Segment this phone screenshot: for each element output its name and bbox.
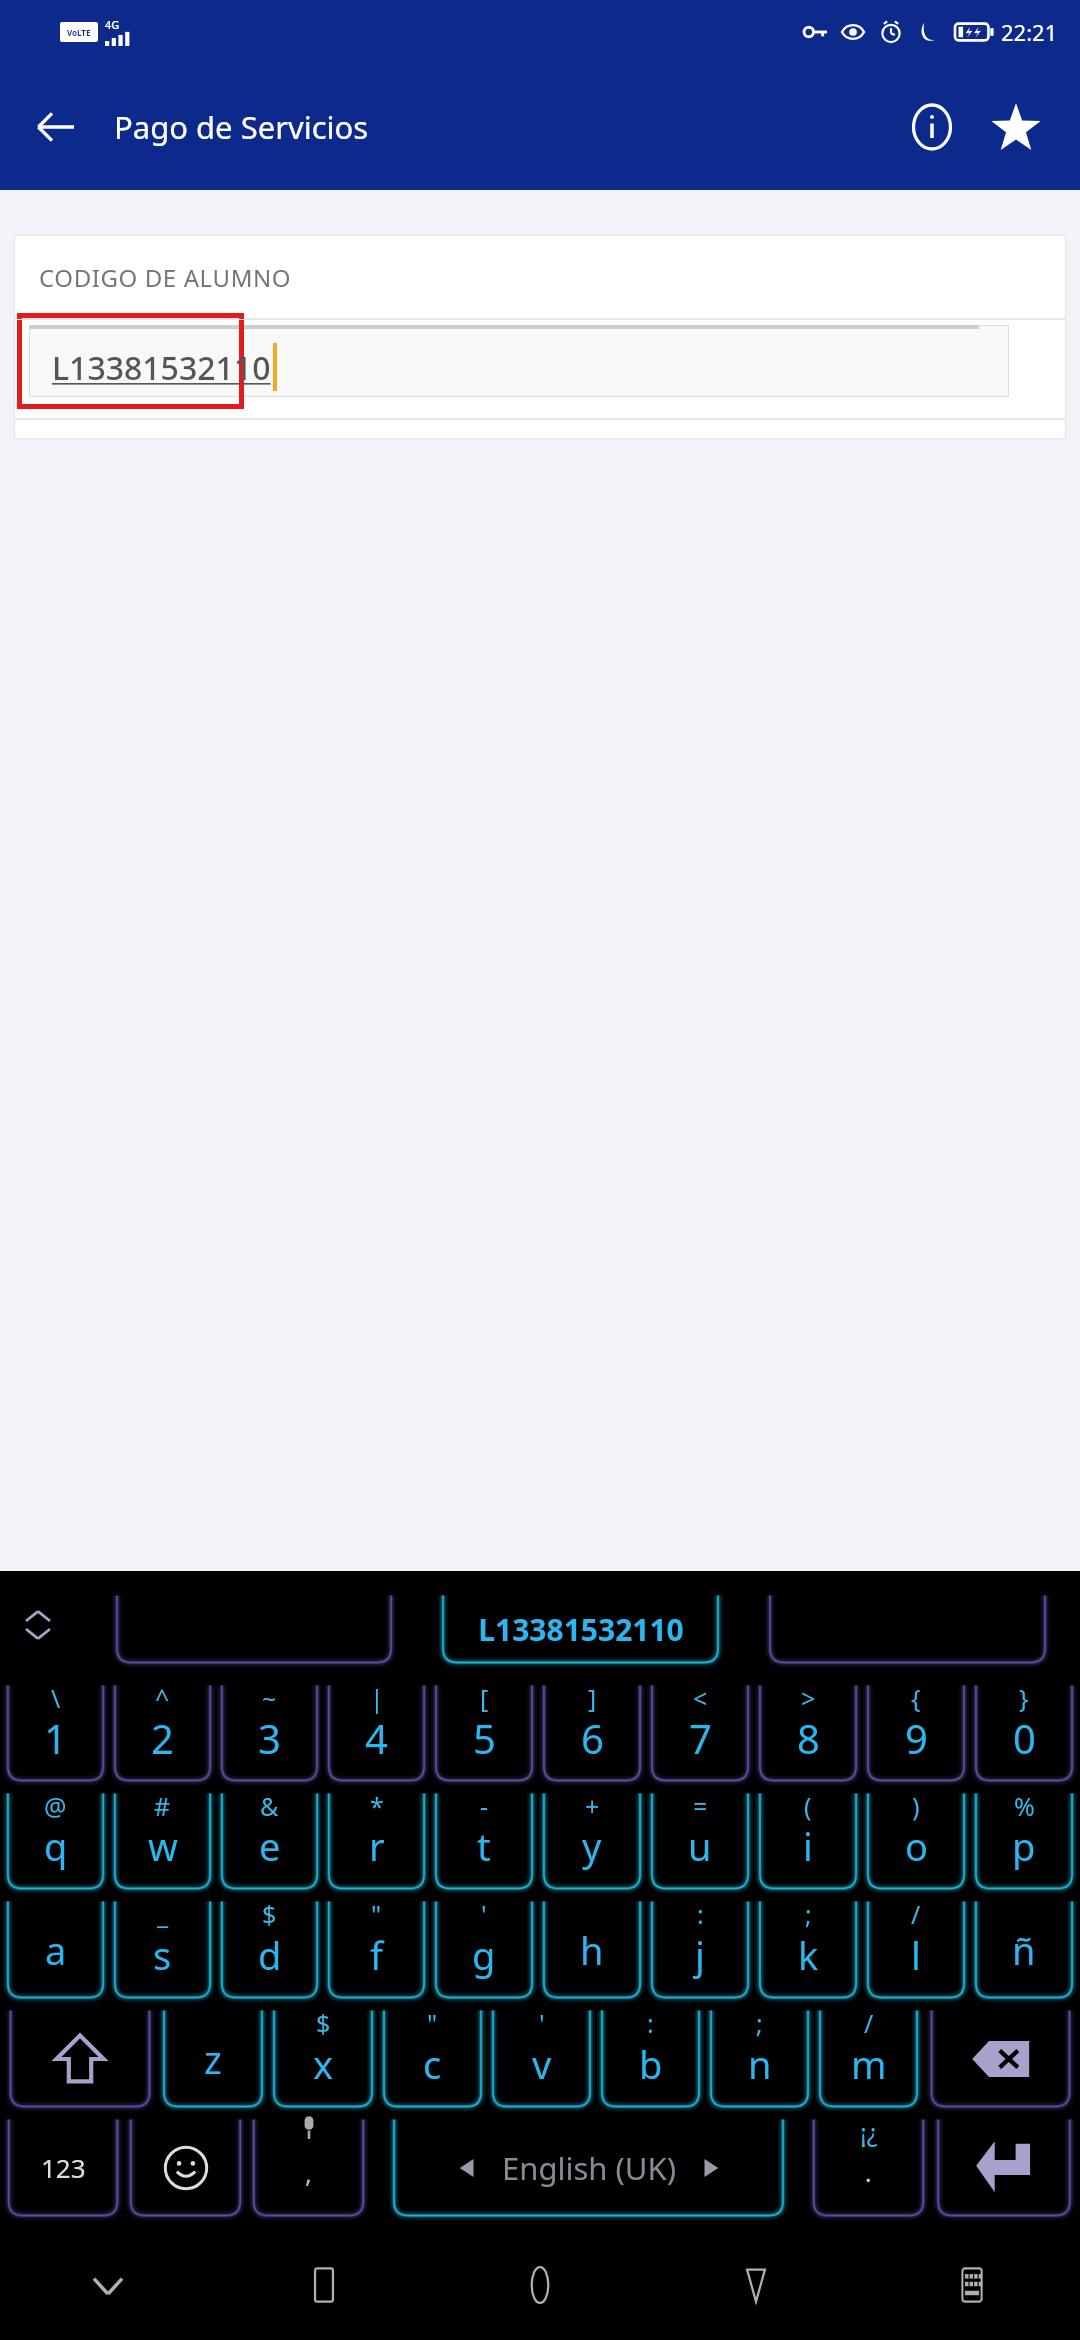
button[interactable]: ' [430,1895,538,2004]
button[interactable]: ~ [216,1679,323,1787]
staticText: ¡¿ [860,2115,878,2149]
button[interactable]: [ [430,1679,538,1787]
button[interactable]: $ [268,2004,378,2113]
staticText: # [154,1789,171,1823]
staticText: \ [51,1681,61,1715]
staticText: $ [262,1897,277,1931]
staticText: > [801,1681,816,1715]
button[interactable]: Home [432,2230,648,2340]
button[interactable]: % [970,1787,1078,1895]
staticText: 2 [151,1711,174,1765]
button[interactable]: Info [890,85,974,169]
button[interactable]: Emoji [124,2113,247,2222]
staticText: English (UK) [502,2147,676,2189]
button[interactable]: Back [20,91,92,163]
button[interactable]: ; [754,1895,862,2004]
staticText: / [911,1897,921,1931]
button[interactable]: : [646,1895,754,2004]
button[interactable]: $ [216,1895,323,2004]
staticText: 8 [797,1711,820,1765]
staticText: u [688,1820,712,1872]
button[interactable]: ) [862,1787,970,1895]
button[interactable]: " [323,1895,430,2004]
button[interactable]: { [862,1679,970,1787]
staticText: a [45,1924,67,1976]
staticText: & [260,1789,279,1823]
button[interactable]: , [247,2113,370,2222]
staticText: f [370,1929,384,1981]
staticText: < [693,1681,708,1715]
staticText: p [1012,1820,1036,1872]
button[interactable]: Backspace [923,2004,1078,2113]
staticText: ~ [262,1681,277,1715]
staticText: t [477,1820,491,1872]
button[interactable]: Back [648,2230,864,2340]
staticText: 7 [689,1711,712,1765]
button[interactable]: / [814,2004,923,2113]
staticText: ) [912,1789,920,1823]
staticText: q [44,1820,68,1872]
staticText: L13381532110 [478,1609,684,1650]
staticText: 22:21 [1001,17,1058,47]
staticText: 0 [1013,1711,1036,1765]
staticText: , [305,2155,312,2190]
button[interactable]: Hide keyboard [0,2230,216,2340]
button[interactable] [29,325,1009,397]
button[interactable] [753,1591,1062,1667]
staticText: ^ [155,1681,170,1715]
staticText: d [258,1929,282,1981]
staticText: . [865,2156,872,2189]
staticText: - [480,1789,489,1823]
staticText: L13381532110 [52,346,271,390]
staticText: y [582,1820,602,1872]
staticText: [ [480,1681,489,1715]
button[interactable]: * [323,1787,430,1895]
button[interactable]: Switch keyboard [864,2230,1080,2340]
button[interactable]: Enter [930,2113,1078,2222]
button[interactable]: @ [2,1787,109,1895]
button[interactable]: Recents [216,2230,432,2340]
staticText: n [748,2038,772,2090]
button[interactable]: ( [754,1787,862,1895]
button[interactable]: Shift [2,2004,158,2113]
button[interactable]: ¡¿ [807,2113,930,2222]
button[interactable]: ñ [970,1895,1078,2004]
staticText: 123 [41,2150,86,2185]
staticText: / [864,2006,874,2040]
staticText: " [371,1897,382,1931]
button[interactable]: Expand suggestions [18,1605,58,1645]
button[interactable]: ^ [109,1679,216,1787]
staticText: 1 [44,1711,67,1765]
button[interactable]: ' [487,2004,596,2113]
button[interactable]: a [2,1895,109,2004]
button[interactable]: z [158,2004,268,2113]
staticText: k [798,1929,819,1981]
button[interactable]: Favorite [974,85,1058,169]
button[interactable]: | [323,1679,430,1787]
button[interactable] [100,1591,408,1667]
staticText: { [911,1681,921,1715]
button[interactable]: ; [705,2004,814,2113]
button[interactable]: ] [538,1679,646,1787]
button[interactable]: } [970,1679,1078,1787]
button[interactable]: English (UK) [370,2113,807,2222]
button[interactable]: \ [2,1679,109,1787]
staticText: : [697,1897,704,1931]
button[interactable]: / [862,1895,970,2004]
button[interactable]: & [216,1787,323,1895]
button[interactable]: > [754,1679,862,1787]
button[interactable]: _ [109,1895,216,2004]
button[interactable]: " [378,2004,487,2113]
button[interactable]: 123 [2,2113,124,2222]
button[interactable]: + [538,1787,646,1895]
button[interactable]: < [646,1679,754,1787]
button[interactable]: L13381532110 [426,1591,735,1667]
button[interactable]: # [109,1787,216,1895]
staticText: + [585,1789,600,1823]
button[interactable]: h [538,1895,646,2004]
button[interactable]: - [430,1787,538,1895]
staticText: 3 [258,1711,281,1765]
button[interactable]: = [646,1787,754,1895]
button[interactable]: : [596,2004,705,2113]
staticText: l [911,1929,921,1981]
